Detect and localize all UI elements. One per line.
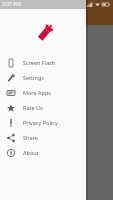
button[interactable]: Settings [0,70,86,85]
staticText: About [23,149,39,156]
staticText: Privacy Policy [23,119,58,126]
staticText: Share [23,134,38,141]
staticText: More Apps [23,89,51,96]
button[interactable]: More Apps [0,85,86,100]
button[interactable]: Rate Us [0,100,86,115]
staticText: Rate Us [23,104,43,111]
staticText: 5:07 PM [2,1,21,8]
button[interactable]: Privacy Policy [0,115,86,130]
staticText: Settings [23,74,44,81]
button[interactable]: About [0,145,86,160]
staticText: Screen Flash [23,59,56,66]
button[interactable]: Screen Flash [0,55,86,70]
button[interactable]: Share [0,130,86,145]
